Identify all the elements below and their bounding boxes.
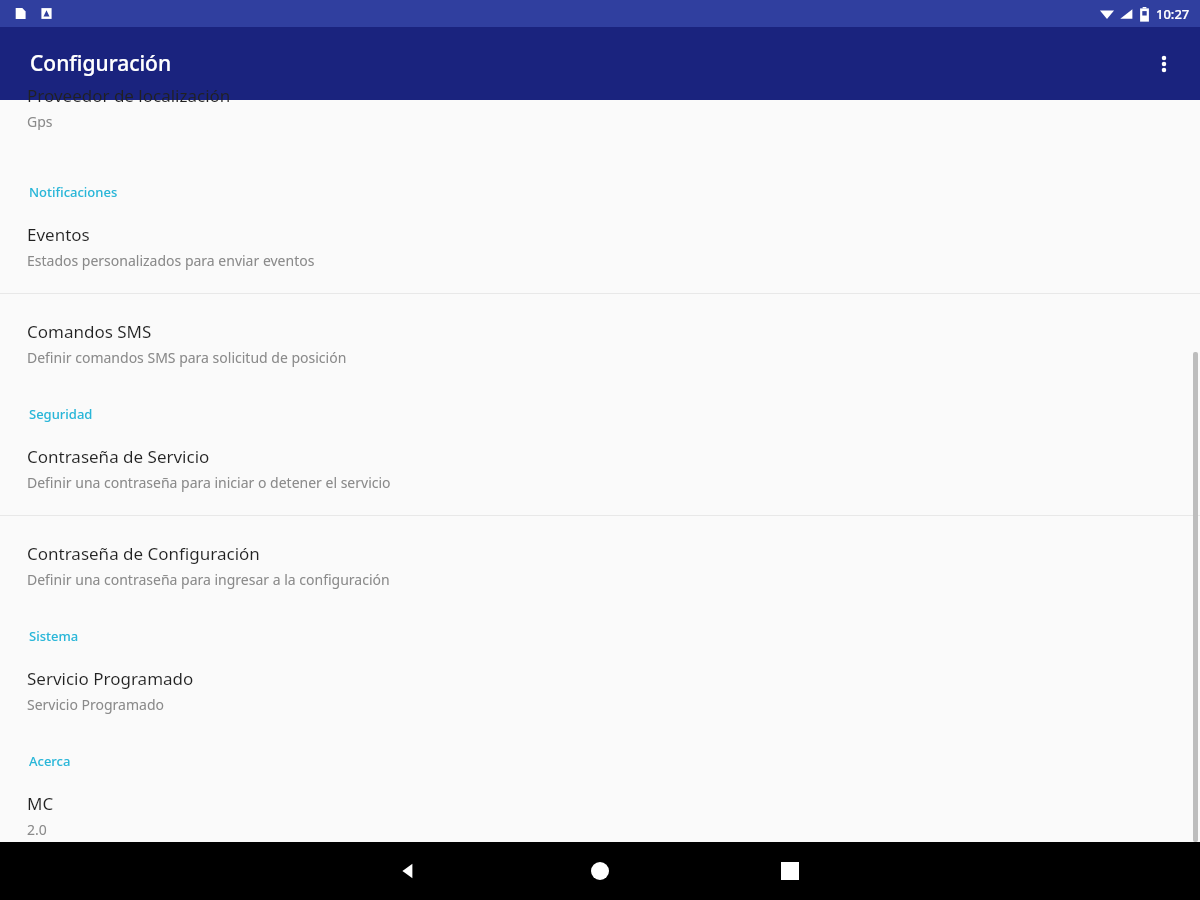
staticText: Contraseña de Configuración — [27, 542, 260, 565]
staticText: Sistema — [29, 627, 79, 645]
staticText: Contraseña de Servicio — [27, 445, 210, 468]
staticText: 10:27 — [1156, 5, 1190, 23]
staticText: Configuración — [30, 49, 172, 78]
button[interactable]: Recent apps — [762, 843, 818, 899]
staticText: MC — [27, 792, 54, 815]
staticText: Servicio Programado — [27, 695, 164, 714]
staticText: Eventos — [27, 223, 90, 246]
staticText: Proveedor de localización — [27, 84, 231, 107]
staticText: Definir una contraseña para ingresar a l… — [27, 570, 390, 589]
staticText: 2.0 — [27, 820, 47, 839]
staticText: Definir comandos SMS para solicitud de p… — [27, 348, 347, 367]
button[interactable]: Contraseña de Configuración — [0, 516, 1200, 589]
button[interactable]: More options — [1140, 40, 1188, 88]
button[interactable]: Contraseña de Servicio — [0, 423, 1200, 492]
staticText: Estados personalizados para enviar event… — [27, 251, 315, 270]
staticText: Comandos SMS — [27, 320, 152, 343]
staticText: Gps — [27, 112, 53, 130]
button[interactable]: Comandos SMS — [0, 294, 1200, 367]
button[interactable]: Eventos — [0, 201, 1200, 270]
staticText: Acerca — [29, 752, 71, 770]
button[interactable]: Back — [380, 843, 436, 899]
button[interactable]: MC — [0, 770, 1200, 839]
button[interactable]: Home — [572, 843, 628, 899]
button[interactable]: Servicio Programado — [0, 645, 1200, 714]
staticText: Servicio Programado — [27, 667, 194, 690]
staticText: Notificaciones — [29, 183, 118, 201]
staticText: Definir una contraseña para iniciar o de… — [27, 473, 391, 492]
staticText: Seguridad — [29, 405, 93, 423]
button[interactable]: Proveedor de localización — [0, 100, 1200, 146]
